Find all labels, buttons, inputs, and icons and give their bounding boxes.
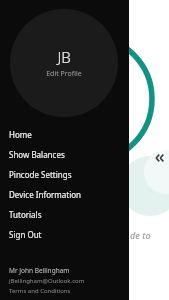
button[interactable]: Close menu [149,148,169,168]
button[interactable]: Home [0,124,129,144]
button[interactable]: JB [10,9,118,117]
button[interactable]: Terms and Conditions [9,287,71,295]
staticText: Home [9,129,32,140]
staticText: Tutorials [9,209,42,220]
staticText: JB [57,47,71,67]
staticText: Pincode Settings [9,169,72,180]
staticText: Edit Profile [46,69,82,79]
staticText: jBellingham@Outlook.com [9,277,85,285]
staticText: Mr John Bellingham [9,266,70,275]
button[interactable]: Sign Out [0,224,129,244]
staticText: Show Balances [9,149,65,160]
staticText: Device Information [9,189,82,200]
button[interactable]: Device Information [0,184,129,204]
button[interactable]: Pincode Settings [0,164,129,184]
button[interactable]: Show Balances [0,144,129,164]
staticText: de to [130,229,151,241]
staticText: Sign Out [9,229,42,240]
button[interactable]: Tutorials [0,204,129,224]
